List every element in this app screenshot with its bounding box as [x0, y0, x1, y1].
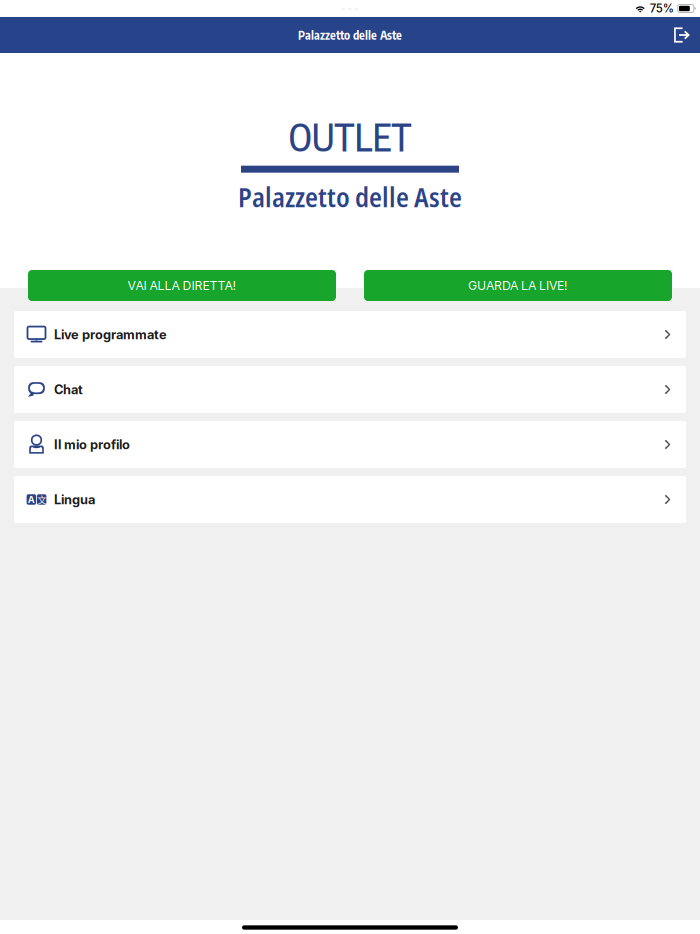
staticText: A: [28, 494, 35, 505]
button[interactable]: Il mio profilo: [14, 421, 686, 468]
button[interactable]: Logout: [664, 17, 700, 53]
button[interactable]: A: [14, 476, 686, 523]
button[interactable]: VAI ALLA DIRETTA!: [28, 270, 336, 301]
button[interactable]: Live programmate: [14, 311, 686, 358]
button[interactable]: GUARDA LA LIVE!: [364, 270, 672, 301]
staticText: GUARDA LA LIVE!: [468, 278, 568, 293]
staticText: OUTLET: [288, 113, 411, 160]
staticText: Lingua: [54, 492, 95, 507]
staticText: Palazzetto delle Aste: [238, 179, 462, 215]
staticText: 文: [37, 493, 46, 506]
staticText: VAI ALLA DIRETTA!: [127, 278, 236, 293]
staticText: Chat: [54, 382, 83, 397]
staticText: 75%: [650, 2, 674, 15]
staticText: Il mio profilo: [54, 437, 130, 452]
staticText: Live programmate: [54, 327, 167, 342]
button[interactable]: Chat: [14, 366, 686, 413]
staticText: Palazzetto delle Aste: [298, 27, 402, 42]
